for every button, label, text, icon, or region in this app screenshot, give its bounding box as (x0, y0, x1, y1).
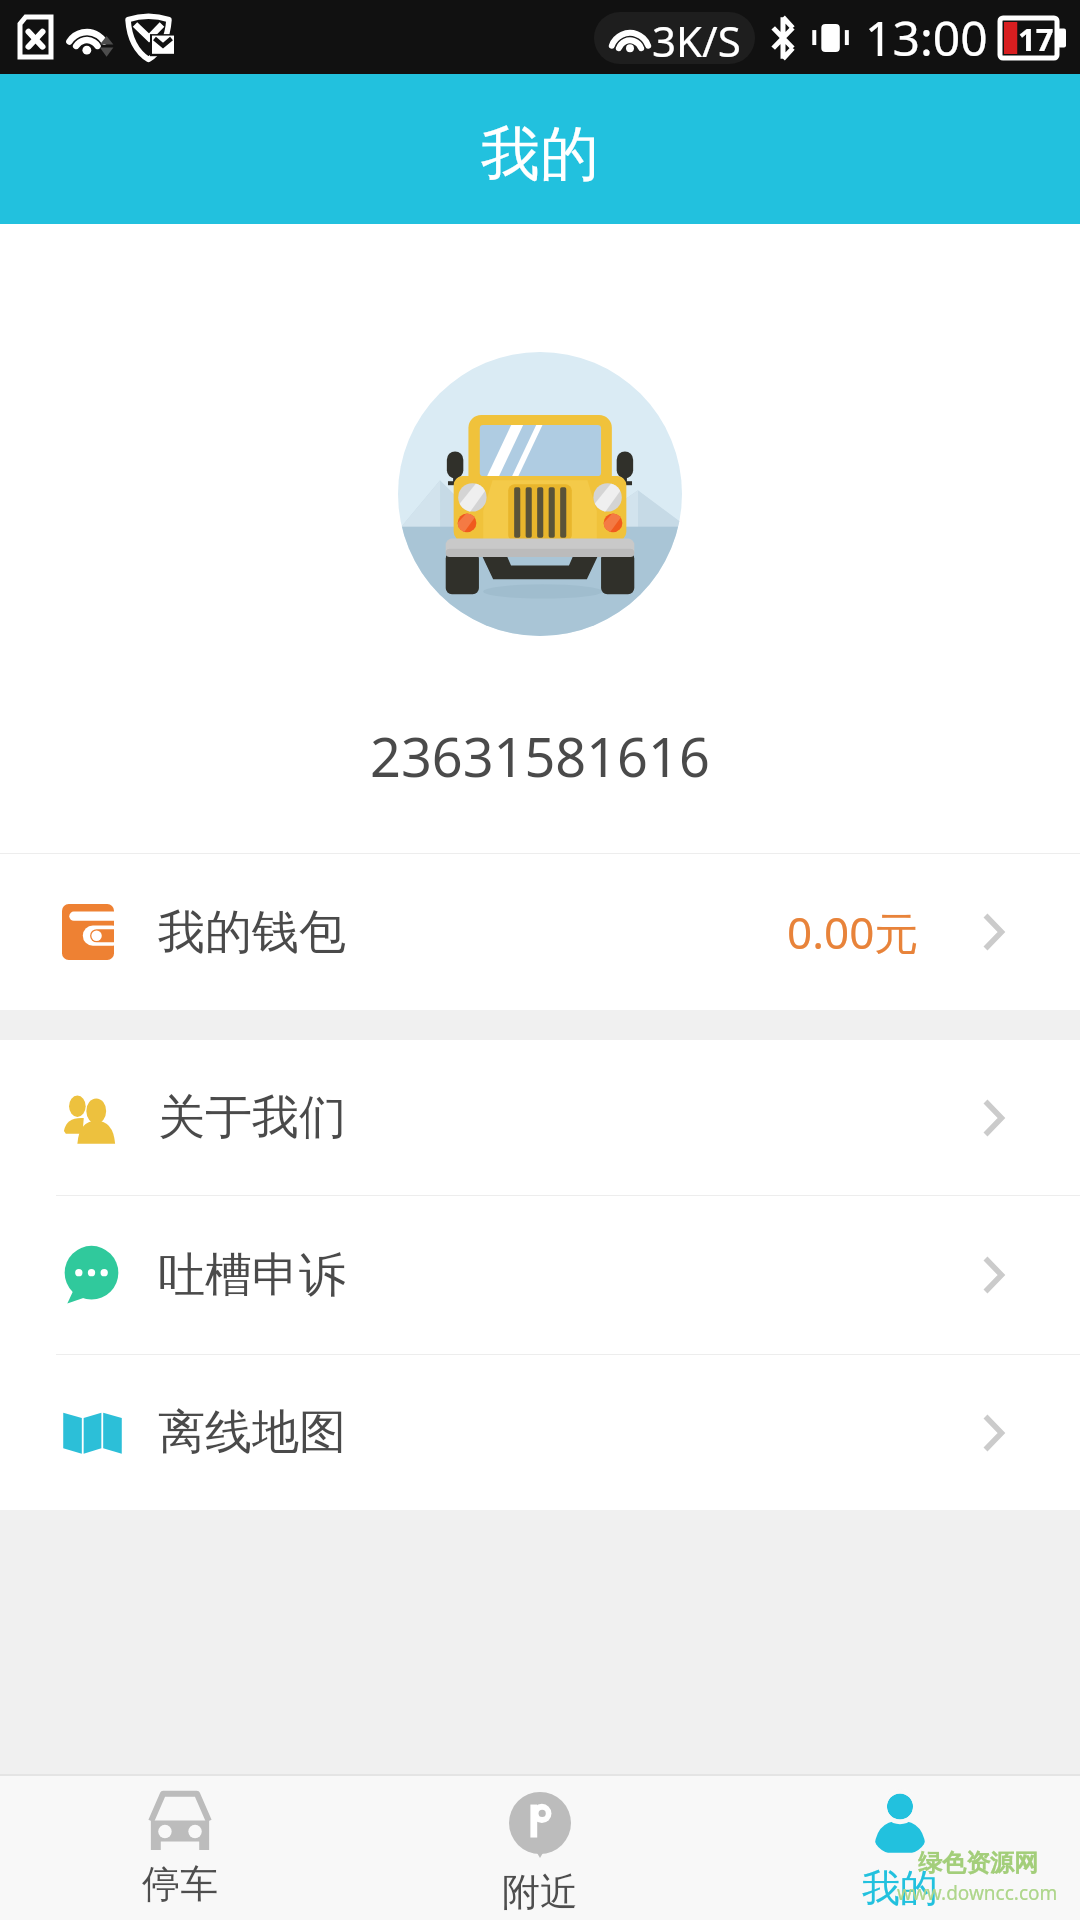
staticText: www.downcc.com (897, 1880, 1058, 1906)
staticText: 0.00元 (787, 902, 919, 962)
staticText: 3K/S (652, 12, 741, 64)
button[interactable]: 离线地图 (0, 1355, 1080, 1510)
staticText: 17 (1018, 18, 1054, 58)
staticText: 离线地图 (158, 1403, 346, 1462)
button[interactable]: Profile header (0, 224, 1080, 853)
staticText: 停车 (142, 1860, 218, 1908)
staticText: 我的 (481, 117, 599, 191)
button[interactable]: 我的钱包 (0, 854, 1080, 1010)
button[interactable]: 关于我们 (0, 1040, 1080, 1195)
staticText: 关于我们 (158, 1088, 346, 1147)
staticText: 吐槽申诉 (158, 1246, 346, 1305)
button[interactable]: 吐槽申诉 (0, 1196, 1080, 1354)
button[interactable]: Parking (0, 1776, 360, 1920)
staticText: 23631581616 (370, 719, 710, 793)
staticText: 附近 (502, 1868, 578, 1916)
button[interactable]: Nearby (360, 1776, 720, 1920)
staticText: 绿色资源网 (918, 1848, 1038, 1878)
button[interactable]: Profile (720, 1776, 1080, 1920)
staticText: 我的 (862, 1864, 938, 1912)
staticText: 13:00 (865, 5, 988, 70)
staticText: 我的钱包 (158, 903, 346, 962)
